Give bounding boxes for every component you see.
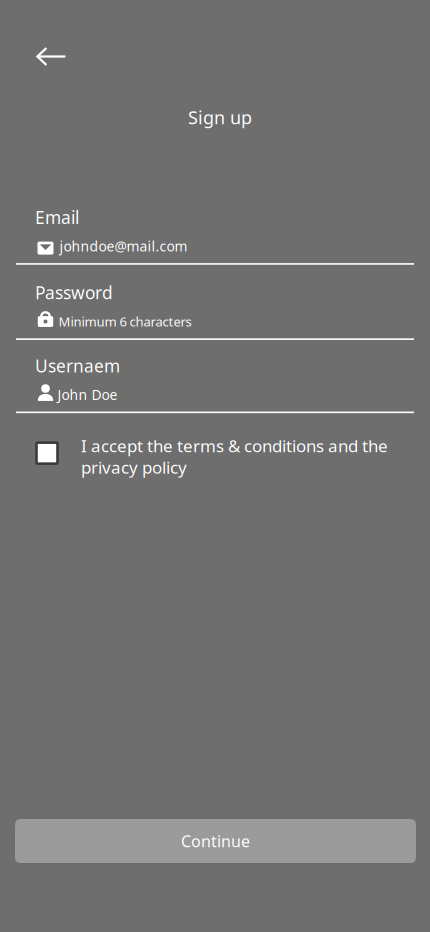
staticText: Minimum 6 characters — [58, 312, 191, 330]
staticText: Sign up — [188, 105, 252, 129]
button[interactable]: Back — [0, 47, 66, 66]
staticText: Continue — [181, 830, 250, 852]
staticText: Email — [35, 205, 79, 229]
staticText: I accept the terms & conditions and the — [81, 434, 388, 457]
staticText: johndoe@mail.com — [59, 237, 187, 256]
staticText: privacy policy — [81, 456, 187, 479]
staticText: Usernaem — [35, 354, 120, 377]
staticText: Password — [35, 281, 113, 304]
button[interactable]: Continue — [15, 819, 416, 863]
staticText: John Doe — [57, 385, 117, 404]
button[interactable]: I accept the terms & conditions and the — [0, 434, 430, 479]
